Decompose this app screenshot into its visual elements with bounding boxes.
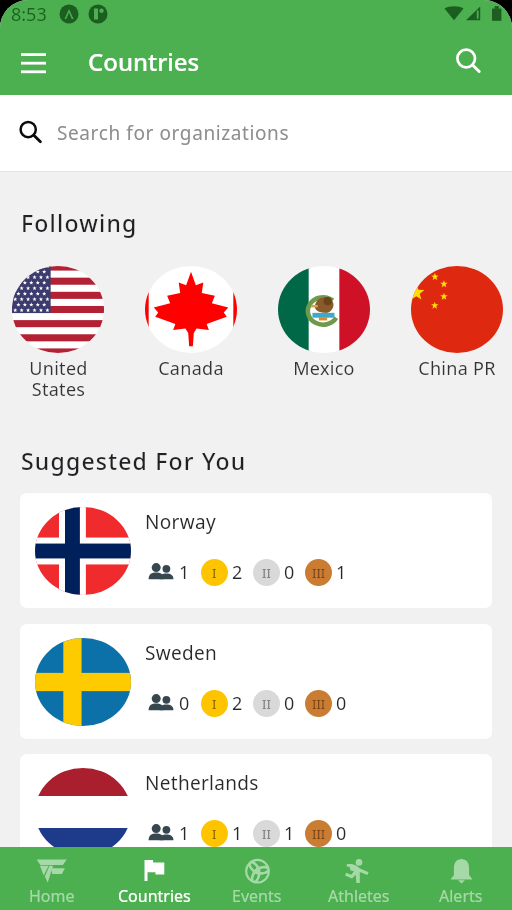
button[interactable]: Mexico <box>278 266 370 381</box>
staticText: Suggested For You <box>21 445 247 476</box>
button[interactable]: Norway <box>20 493 492 608</box>
staticText: 2 <box>232 560 243 585</box>
staticText: Mexico <box>293 356 355 381</box>
staticText: 1 <box>232 821 243 846</box>
staticText: Athletes <box>328 885 390 907</box>
staticText: Home <box>29 885 75 907</box>
staticText: III <box>312 695 326 713</box>
staticText: Norway <box>145 509 216 535</box>
staticText: III <box>312 825 326 843</box>
staticText: 1 <box>284 821 295 846</box>
button[interactable]: Canada <box>145 266 237 381</box>
staticText: II <box>262 695 271 713</box>
button[interactable]: Countries <box>103 847 206 910</box>
staticText: 0 <box>284 560 295 585</box>
staticText: II <box>262 825 271 843</box>
staticText: 0 <box>336 821 347 846</box>
button[interactable]: Home <box>0 847 103 910</box>
staticText: Countries <box>118 885 191 907</box>
staticText: 0 <box>336 691 347 716</box>
button[interactable]: Events <box>206 847 308 910</box>
button[interactable]: Athletes <box>308 847 410 910</box>
staticText: 0 <box>284 691 295 716</box>
staticText: II <box>262 564 271 582</box>
staticText: Canada <box>158 356 224 381</box>
staticText: United States <box>29 356 88 401</box>
button[interactable]: China PR <box>411 266 503 381</box>
staticText: 8:53 <box>11 2 47 27</box>
staticText: 1 <box>179 560 190 585</box>
staticText: I <box>212 564 217 582</box>
staticText: Events <box>232 885 282 907</box>
staticText: I <box>212 825 217 843</box>
staticText: 1 <box>179 821 190 846</box>
staticText: I <box>212 695 217 713</box>
button[interactable]: Open navigation menu <box>11 40 55 84</box>
staticText: 2 <box>232 691 243 716</box>
button[interactable]: Alerts <box>410 847 512 910</box>
staticText: 1 <box>336 560 347 585</box>
button[interactable]: Netherlands <box>20 754 492 869</box>
button[interactable]: Search <box>447 40 491 84</box>
staticText: Search for organizations <box>57 120 290 146</box>
staticText: China PR <box>418 356 496 381</box>
button[interactable]: Sweden <box>20 624 492 739</box>
button[interactable]: Search for organizations <box>0 95 512 171</box>
staticText: Following <box>21 207 138 238</box>
staticText: Countries <box>88 45 200 78</box>
staticText: 0 <box>179 691 190 716</box>
staticText: III <box>312 564 326 582</box>
button[interactable]: United States <box>12 266 104 401</box>
staticText: Netherlands <box>145 770 259 796</box>
staticText: Sweden <box>145 640 218 666</box>
staticText: Alerts <box>439 885 483 907</box>
